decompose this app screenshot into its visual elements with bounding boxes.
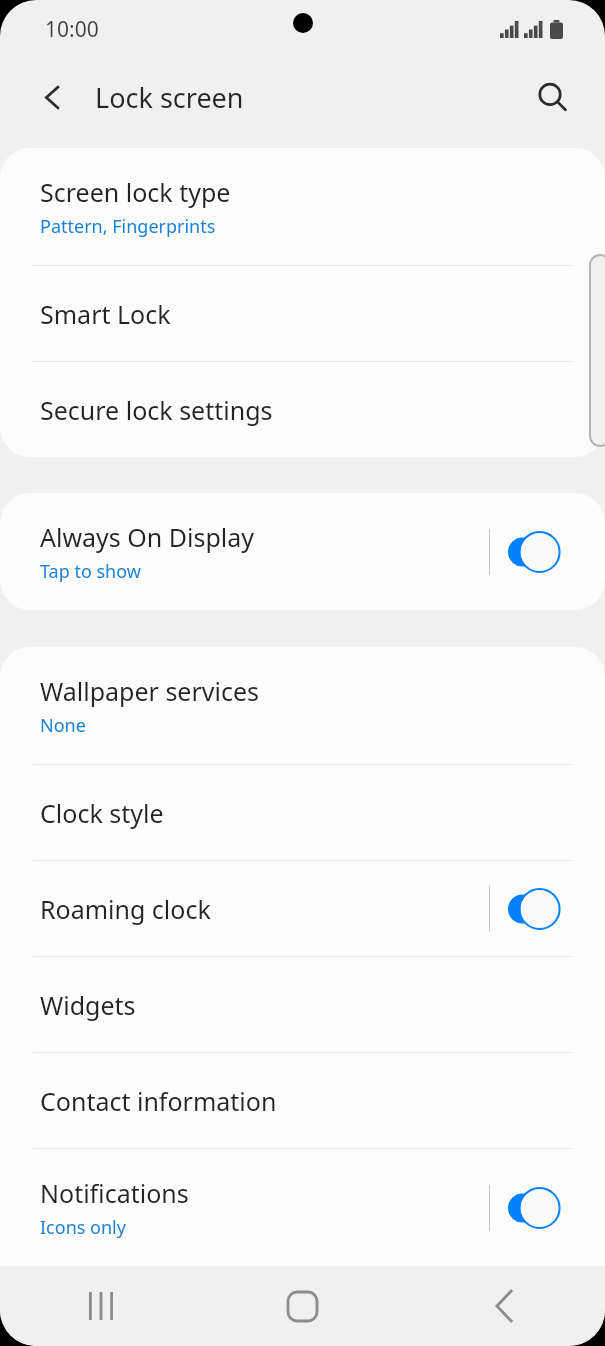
button[interactable]: Roaming clock <box>0 861 605 956</box>
staticText: Tap to show <box>40 559 141 584</box>
button[interactable]: Secure lock settings <box>0 362 605 457</box>
button[interactable]: Wallpaper services <box>0 647 605 764</box>
staticText: Clock style <box>40 796 164 830</box>
button[interactable]: Clock style <box>0 765 605 860</box>
button[interactable]: Notifications <box>0 1149 605 1266</box>
button[interactable]: Home <box>201 1266 403 1346</box>
button[interactable]: Search <box>526 71 578 123</box>
staticText: Roaming clock <box>40 892 211 926</box>
button[interactable]: Smart Lock <box>0 266 605 361</box>
staticText: None <box>40 713 86 738</box>
staticText: 10:00 <box>45 15 99 44</box>
staticText: Screen lock type <box>40 175 231 209</box>
button[interactable]: Back <box>27 72 77 122</box>
staticText: Lock screen <box>95 79 244 116</box>
button[interactable]: Widgets <box>0 957 605 1052</box>
staticText: Contact information <box>40 1084 277 1118</box>
staticText: Pattern, Fingerprints <box>40 214 216 239</box>
staticText: Secure lock settings <box>40 393 273 427</box>
button[interactable]: Recents <box>0 1266 201 1346</box>
staticText: Notifications <box>40 1176 189 1210</box>
staticText: Smart Lock <box>40 297 171 331</box>
staticText: Icons only <box>40 1215 126 1240</box>
button[interactable]: Toggle Always On Display <box>505 528 569 576</box>
button[interactable]: Back <box>403 1266 605 1346</box>
staticText: Widgets <box>40 988 136 1022</box>
staticText: Always On Display <box>40 520 255 554</box>
staticText: Wallpaper services <box>40 674 260 708</box>
button[interactable]: Always On Display <box>0 493 605 610</box>
button[interactable]: Toggle Notifications <box>505 1184 569 1232</box>
button[interactable]: Toggle Roaming clock <box>505 885 569 933</box>
button[interactable]: Screen lock type <box>0 148 605 265</box>
button[interactable]: Contact information <box>0 1053 605 1148</box>
